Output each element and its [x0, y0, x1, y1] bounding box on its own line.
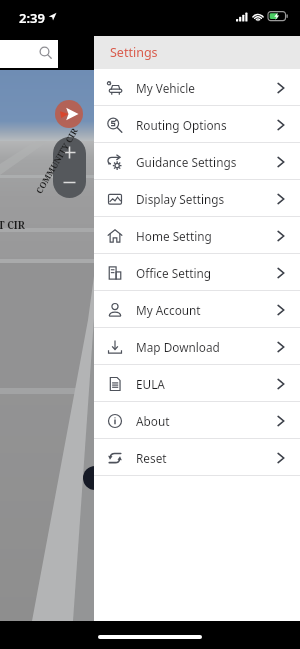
- button[interactable]: Search: [0, 40, 58, 68]
- button[interactable]: Zoom out: [53, 167, 86, 198]
- button[interactable]: EULA: [94, 365, 300, 402]
- button[interactable]: My Account: [94, 291, 300, 328]
- staticText: Office Setting: [136, 265, 211, 281]
- staticText: Routing Options: [136, 117, 227, 133]
- staticText: My Account: [136, 302, 201, 318]
- staticText: T CIR: [0, 218, 25, 232]
- staticText: Display Settings: [136, 191, 225, 207]
- button[interactable]: Zoom in: [53, 137, 86, 167]
- button[interactable]: Map Download: [94, 328, 300, 365]
- button[interactable]: Current location: [55, 100, 83, 128]
- staticText: 2:39: [19, 9, 45, 27]
- button[interactable]: Routing Options: [94, 106, 300, 143]
- button[interactable]: Navigation: [83, 466, 107, 490]
- button[interactable]: Guidance Settings: [94, 143, 300, 180]
- staticText: Home Setting: [136, 228, 212, 244]
- staticText: Reset: [136, 450, 167, 466]
- staticText: Guidance Settings: [136, 154, 237, 170]
- staticText: EULA: [136, 376, 165, 392]
- staticText: My Vehicle: [136, 80, 195, 96]
- staticText: About: [136, 413, 170, 429]
- button[interactable]: About: [94, 402, 300, 439]
- button[interactable]: Home Setting: [94, 217, 300, 254]
- staticText: Map Download: [136, 339, 220, 355]
- staticText: Settings: [110, 44, 158, 61]
- button[interactable]: Office Setting: [94, 254, 300, 291]
- button[interactable]: Display Settings: [94, 180, 300, 217]
- button[interactable]: Reset: [94, 439, 300, 476]
- staticText: COMMUNITY CIR: [33, 126, 81, 196]
- button[interactable]: My Vehicle: [94, 69, 300, 106]
